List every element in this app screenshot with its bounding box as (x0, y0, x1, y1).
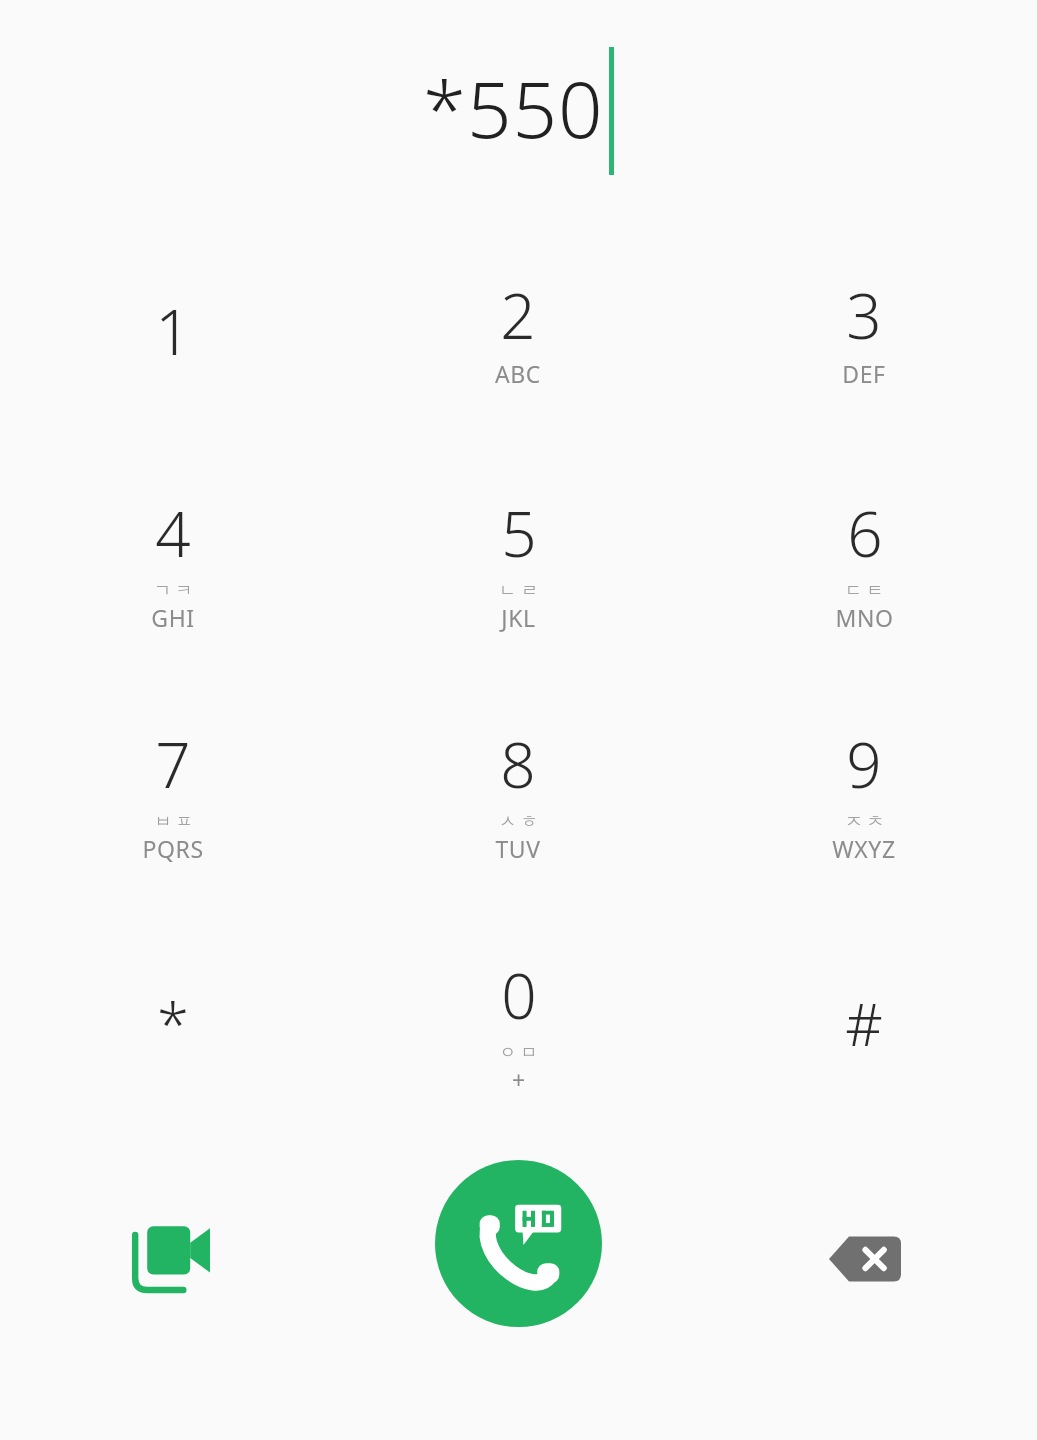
staticText: # (845, 984, 883, 1063)
button[interactable]: Call (435, 1160, 602, 1327)
staticText: * (157, 984, 189, 1063)
button[interactable]: 2 (345, 215, 691, 446)
staticText: 8 (500, 722, 536, 806)
staticText: ㄱ ㅋ (154, 578, 193, 601)
button[interactable]: 1 (0, 215, 345, 446)
staticText: MNO (835, 602, 894, 633)
staticText: 9 (846, 722, 882, 806)
staticText: PQRS (142, 833, 204, 864)
button[interactable]: Backspace (807, 1201, 922, 1316)
staticText: WXYZ (832, 833, 896, 864)
button[interactable]: 4 (0, 446, 345, 677)
staticText: ㅅ ㅎ (499, 809, 538, 832)
staticText: 6 (847, 491, 883, 575)
button[interactable]: 5 (345, 446, 691, 677)
button[interactable]: 3 (691, 215, 1037, 446)
staticText: *550 (423, 55, 604, 161)
staticText: 5 (501, 491, 537, 575)
staticText: JKL (501, 602, 536, 633)
staticText: DEF (842, 358, 886, 389)
button[interactable]: # (691, 908, 1037, 1139)
button[interactable]: 7 (0, 677, 345, 908)
button[interactable]: 0 (345, 908, 691, 1139)
button[interactable]: 8 (345, 677, 691, 908)
staticText: ㅈ ㅊ (845, 809, 884, 832)
staticText: ㅂ ㅍ (154, 809, 193, 832)
staticText: ㄴ ㄹ (499, 578, 538, 601)
staticText: 4 (155, 491, 191, 575)
staticText: 0 (501, 953, 537, 1037)
staticText: ㄷ ㅌ (845, 578, 884, 601)
button[interactable]: * (0, 908, 345, 1139)
staticText: + (512, 1064, 526, 1095)
staticText: 7 (155, 722, 191, 806)
button[interactable]: 9 (691, 677, 1037, 908)
staticText: ABC (495, 358, 541, 389)
staticText: 3 (846, 273, 882, 357)
button[interactable]: 6 (691, 446, 1037, 677)
staticText: 2 (500, 273, 536, 357)
staticText: ㅇ ㅁ (499, 1040, 538, 1063)
staticText: TUV (495, 833, 541, 864)
staticText: 1 (155, 289, 191, 373)
staticText: GHI (151, 602, 195, 633)
button[interactable]: Video call (115, 1201, 230, 1316)
